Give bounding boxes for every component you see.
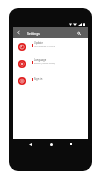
button[interactable]: Back — [26, 140, 34, 148]
staticText: Sign in — [34, 77, 43, 81]
staticText: Settings — [27, 31, 40, 35]
button[interactable]: Update — [13, 38, 88, 55]
button[interactable]: Language — [13, 55, 88, 72]
button[interactable]: Recents — [67, 140, 75, 148]
staticText: Last updated 7/1/2018 — [34, 45, 56, 48]
staticText: English (United States) — [34, 62, 56, 65]
staticText: Language — [34, 58, 47, 62]
button[interactable]: Back — [13, 27, 24, 38]
button[interactable]: Sign in — [13, 72, 88, 89]
button[interactable]: Home — [47, 140, 55, 148]
button[interactable]: Search — [73, 28, 84, 39]
staticText: Update — [34, 41, 43, 45]
